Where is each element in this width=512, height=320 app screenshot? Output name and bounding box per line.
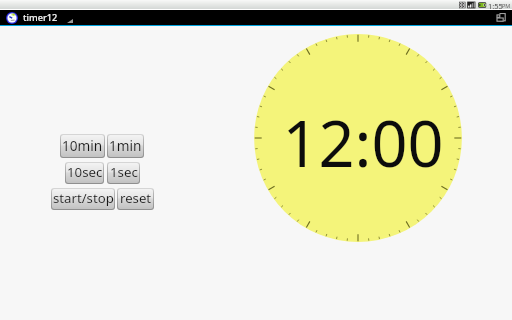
staticText: 1sec (110, 163, 138, 181)
staticText: reset (120, 189, 152, 207)
button[interactable]: More options (492, 10, 510, 25)
staticText: 10sec (67, 163, 103, 181)
button[interactable]: Timer clock face, 12:00 (254, 34, 462, 242)
button[interactable]: 10sec (66, 163, 103, 183)
staticText: timer12 (23, 11, 58, 24)
button[interactable]: timer12 – open navigation (0, 10, 73, 25)
button[interactable]: 1min (108, 135, 143, 157)
staticText: 1min (109, 136, 142, 155)
staticText: 10min (62, 136, 103, 155)
staticText: 12:00 (282, 100, 444, 176)
staticText: start/stop (53, 189, 114, 207)
staticText: PM (502, 2, 511, 9)
staticText: 1:55 (488, 1, 503, 10)
button[interactable]: start/stop (52, 189, 114, 209)
button[interactable]: reset (118, 189, 153, 209)
button[interactable]: 1sec (108, 163, 139, 183)
button[interactable]: 10min (61, 135, 104, 157)
